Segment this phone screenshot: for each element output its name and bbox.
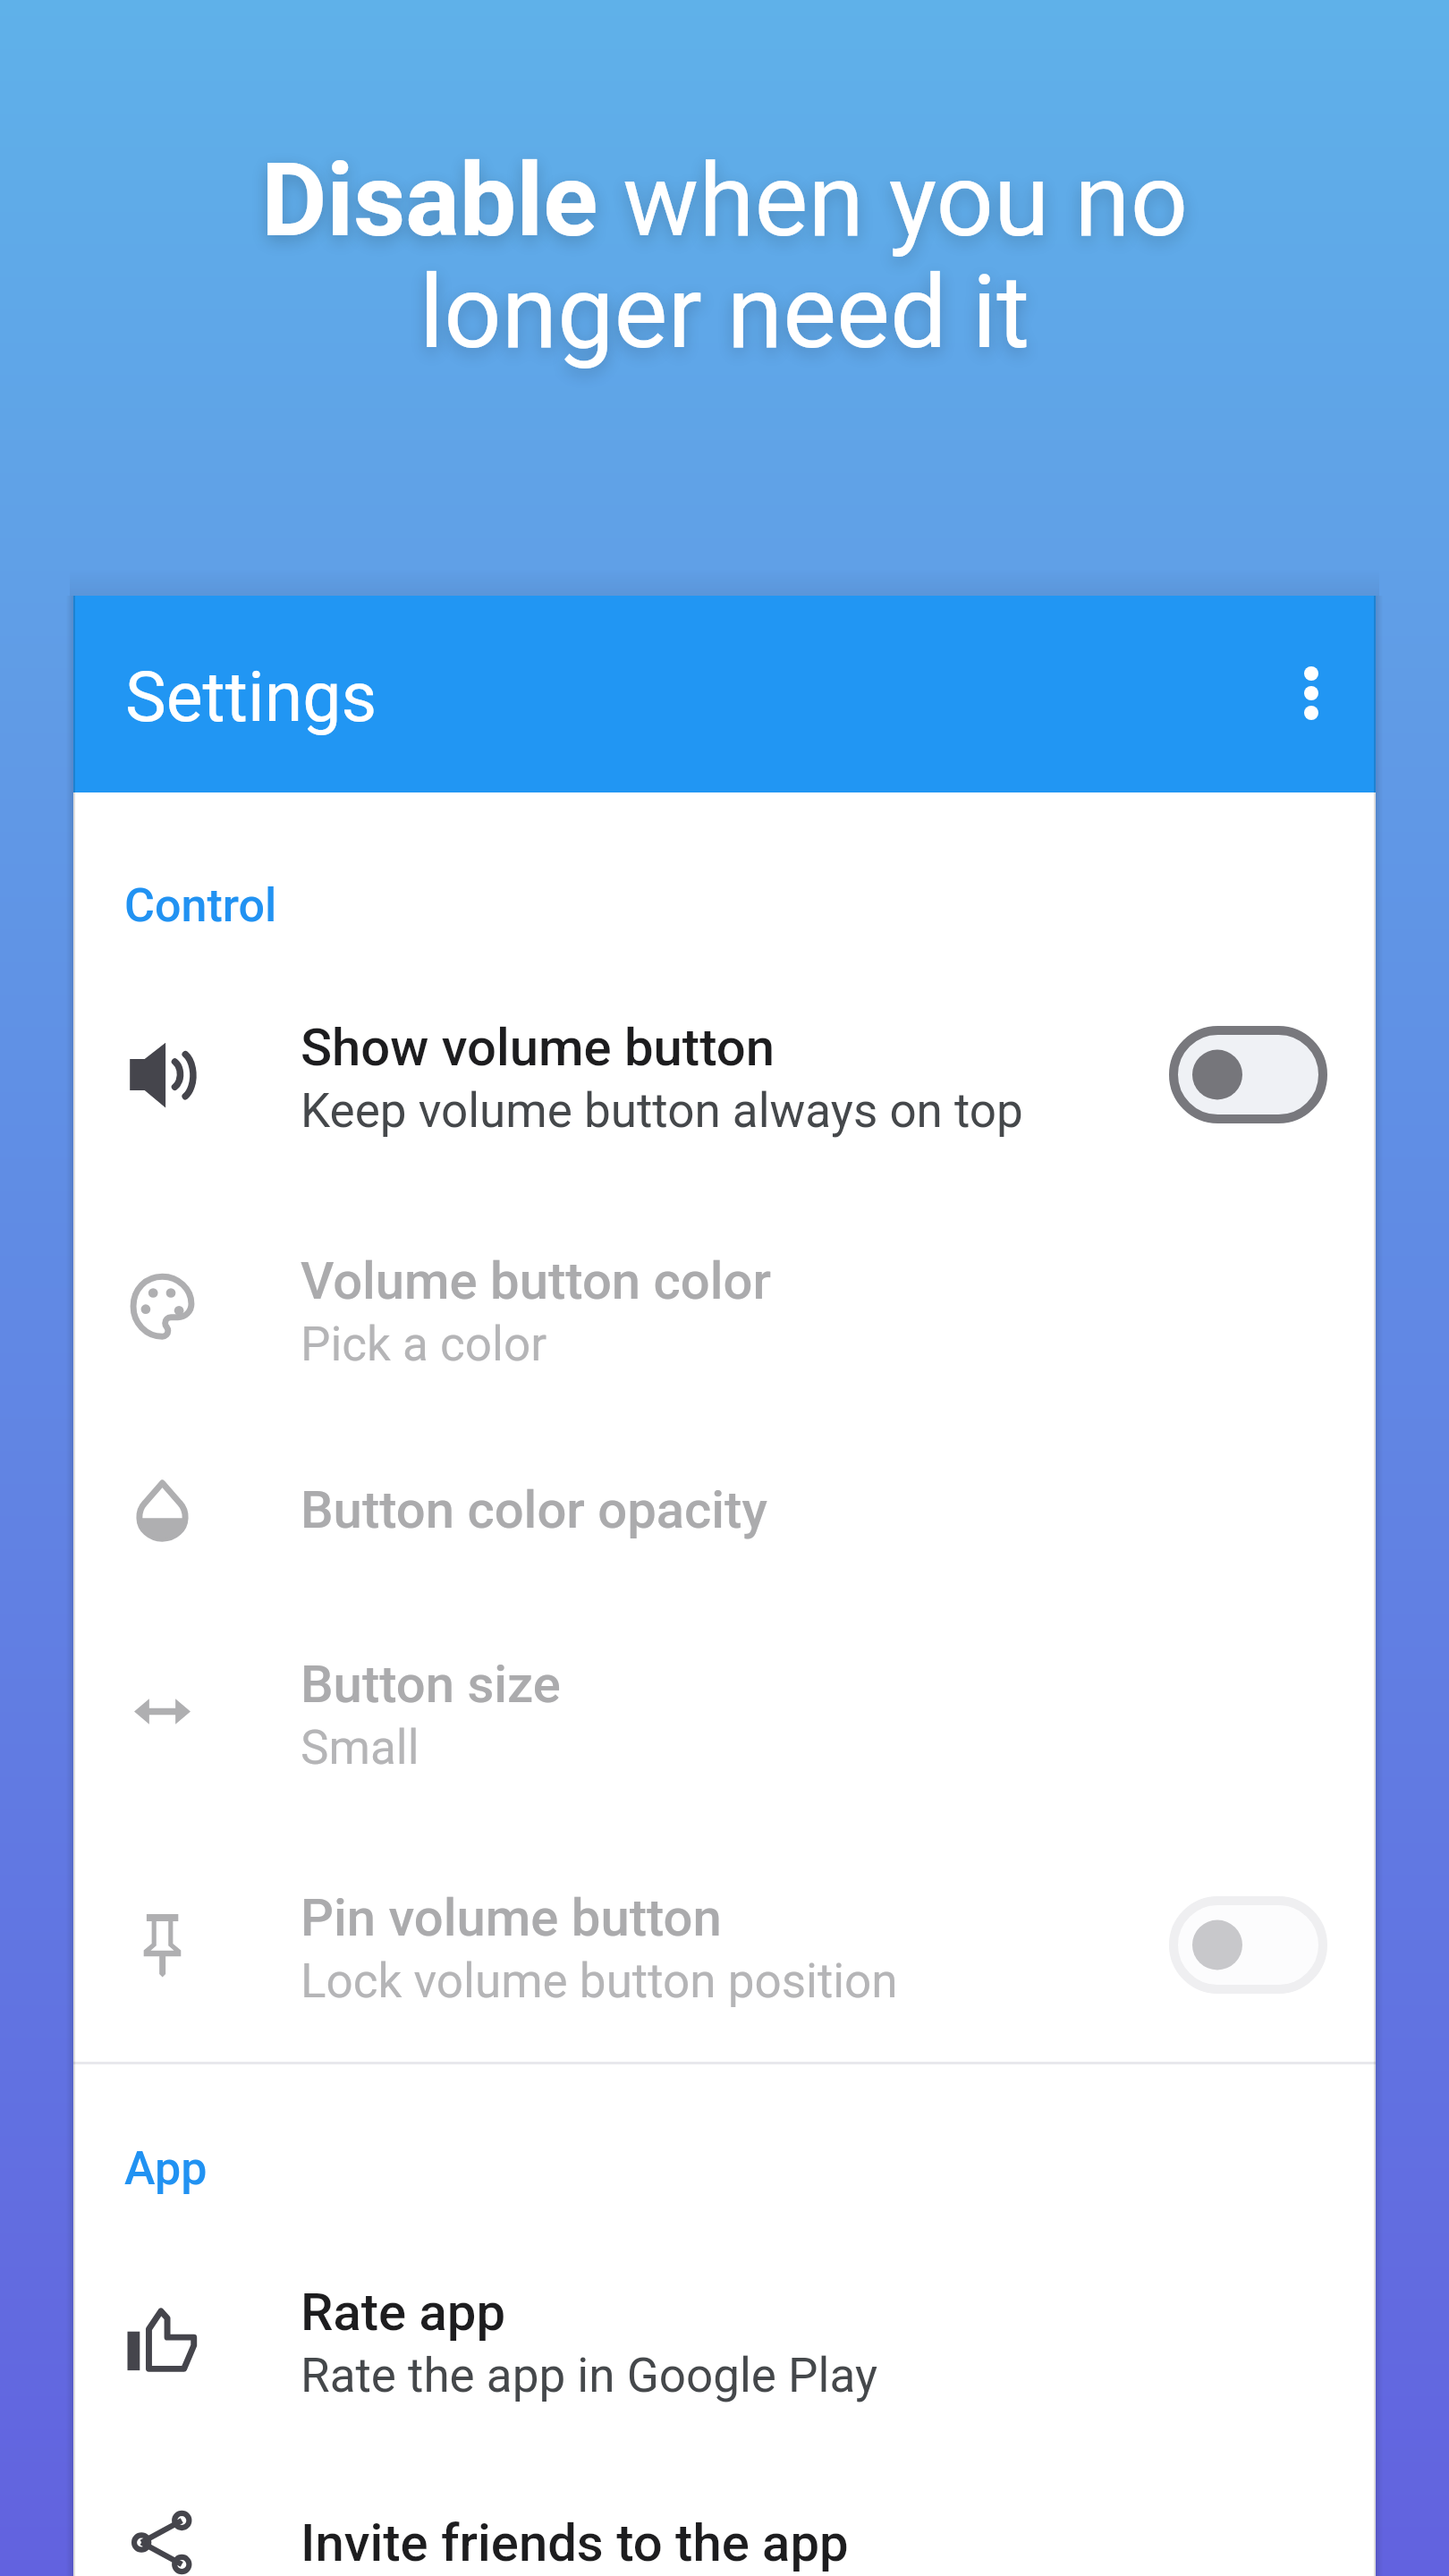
staticText: Small — [301, 1720, 419, 1775]
button[interactable]: Volume button color — [73, 1191, 1376, 1425]
button[interactable]: Invite friends to the app — [73, 2456, 1376, 2576]
button[interactable]: Toggle switch, off — [1169, 1026, 1327, 1123]
staticText: Invite friends to the app — [301, 2512, 849, 2573]
staticText: Disable when you no longer need it — [0, 141, 1449, 372]
staticText: Pin volume button — [301, 1887, 722, 1948]
button[interactable]: Button size — [73, 1595, 1376, 1828]
staticText: App — [124, 2141, 208, 2196]
staticText: Keep volume button always on top — [301, 1083, 1023, 1139]
button[interactable]: Toggle switch, off — [1169, 1896, 1327, 1994]
button[interactable]: Rate app — [73, 2223, 1376, 2456]
staticText: Lock volume button position — [301, 1953, 898, 2009]
button[interactable]: More options — [1258, 640, 1365, 747]
staticText: Volume button color — [301, 1250, 771, 1311]
button[interactable]: Pin volume button — [73, 1828, 1376, 2062]
staticText: Rate app — [301, 2282, 506, 2343]
button[interactable]: Button color opacity — [73, 1425, 1376, 1595]
button[interactable]: Show volume button — [73, 958, 1376, 1191]
staticText: Button size — [301, 1654, 561, 1715]
staticText: Pick a color — [301, 1317, 547, 1372]
staticText: Show volume button — [301, 1017, 775, 1078]
staticText: Rate the app in Google Play — [301, 2348, 877, 2403]
staticText: Control — [124, 878, 277, 933]
staticText: Button color opacity — [301, 1479, 767, 1540]
staticText: Settings — [125, 657, 377, 738]
